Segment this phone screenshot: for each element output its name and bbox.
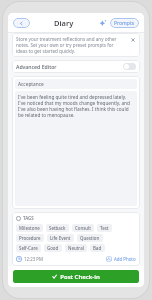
button[interactable]: Dismiss — [129, 36, 136, 43]
staticText: Setback — [49, 225, 66, 231]
staticText: Self-Care — [19, 245, 38, 251]
staticText: I've been feeling quite tired and depres… — [18, 94, 134, 118]
staticText: Advanced Editor — [16, 63, 57, 70]
staticText: Procedure — [19, 235, 41, 241]
staticText: Good — [47, 245, 59, 251]
staticText: Consult — [75, 225, 91, 231]
button[interactable]: Procedure — [16, 234, 44, 242]
staticText: Neutral — [68, 245, 84, 251]
staticText: Test — [100, 225, 109, 231]
button[interactable]: Post Check-in — [13, 270, 139, 283]
button[interactable]: 12:23 PM — [16, 255, 44, 263]
button[interactable]: Back — [13, 18, 30, 28]
button[interactable]: Self-Care — [16, 244, 41, 252]
button[interactable]: Milestone — [16, 224, 43, 232]
button[interactable]: Acceptance — [15, 79, 137, 89]
button[interactable]: Add Photo — [106, 255, 136, 263]
button[interactable]: Question — [77, 234, 103, 242]
staticText: Acceptance — [18, 81, 44, 88]
button[interactable]: Advanced Editor — [12, 60, 140, 73]
button[interactable]: Prompts — [110, 18, 139, 28]
staticText: Life Event — [50, 235, 71, 241]
staticText: TAGS — [23, 215, 34, 221]
button[interactable]: Setback — [46, 224, 69, 232]
button[interactable]: Life Event — [47, 234, 74, 242]
button[interactable]: Bad — [90, 244, 105, 252]
staticText: Post Check-in — [60, 273, 100, 281]
staticText: Bad — [93, 245, 102, 251]
staticText: Prompts — [114, 20, 135, 27]
button[interactable]: Neutral — [65, 244, 87, 252]
staticText: Store your treatment reflections and any… — [16, 36, 126, 54]
staticText: Milestone — [19, 225, 40, 231]
button[interactable]: Good — [44, 244, 62, 252]
staticText: Add Photo — [114, 256, 136, 262]
button[interactable]: I've been feeling quite tired and depres… — [15, 91, 137, 206]
staticText: Question — [80, 235, 100, 241]
button[interactable]: Test — [97, 224, 112, 232]
staticText: 12:23 PM — [24, 256, 44, 262]
button[interactable]: AI assist — [98, 18, 108, 28]
staticText: Diary — [54, 18, 74, 28]
button[interactable]: Consult — [72, 224, 94, 232]
